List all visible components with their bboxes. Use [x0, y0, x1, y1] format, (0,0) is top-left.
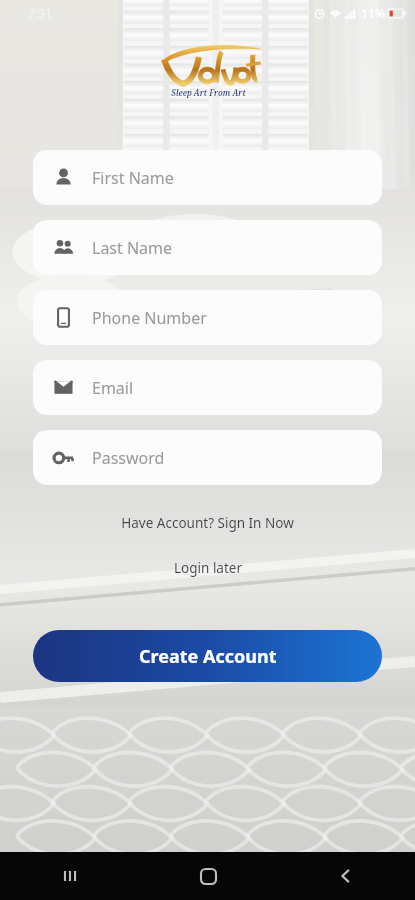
button[interactable]: Phone Number: [33, 290, 382, 345]
staticText: Phone Number: [92, 307, 207, 329]
staticText: Login later: [174, 559, 242, 577]
button[interactable]: Password: [33, 430, 382, 485]
staticText: First Name: [92, 167, 174, 189]
button[interactable]: Login later: [0, 554, 415, 582]
button[interactable]: Create Account: [33, 630, 382, 682]
button[interactable]: Back: [277, 852, 415, 900]
button[interactable]: Email: [33, 360, 382, 415]
staticText: Create Account: [139, 644, 277, 669]
button[interactable]: Home: [139, 852, 277, 900]
staticText: Password: [92, 447, 165, 469]
staticText: 11%: [361, 5, 385, 21]
staticText: Have Account? Sign In Now: [121, 514, 294, 532]
button[interactable]: First Name: [33, 150, 382, 205]
staticText: Sleep Art From Art: [171, 87, 246, 98]
button[interactable]: Recent apps: [0, 852, 139, 900]
staticText: Email: [92, 377, 134, 399]
button[interactable]: Have Account? Sign In Now: [0, 509, 415, 537]
button[interactable]: Last Name: [33, 220, 382, 275]
staticText: 7:31: [28, 5, 52, 21]
staticText: Last Name: [92, 237, 173, 259]
